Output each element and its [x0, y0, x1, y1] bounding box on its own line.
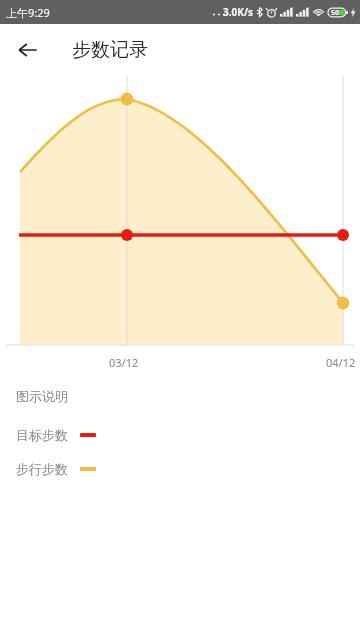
button[interactable]: 步行步数	[0, 460, 360, 478]
staticText: 50	[331, 8, 340, 18]
staticText: 上午9:29	[6, 5, 50, 20]
staticText: 图示说明	[16, 388, 68, 404]
staticText: 04/12	[326, 355, 360, 370]
button[interactable]: 目标步数	[0, 426, 360, 444]
staticText: 步行步数	[16, 461, 68, 477]
staticText: 03/12	[109, 355, 145, 370]
staticText: 目标步数	[16, 427, 68, 443]
staticText: 3.0K/s	[223, 5, 254, 19]
button[interactable]: 返回	[8, 30, 48, 70]
staticText: 步数记录	[72, 38, 148, 62]
